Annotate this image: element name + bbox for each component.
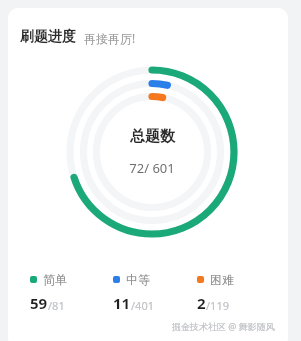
staticText: 再接再厉! <box>84 30 136 46</box>
button[interactable]: 刷题进度 <box>20 28 136 46</box>
staticText: 59 <box>30 293 48 313</box>
staticText: 2 <box>197 293 206 313</box>
staticText: 总题数 <box>130 127 175 146</box>
button[interactable]: 简单 <box>30 272 113 313</box>
other: Problem progress rings <box>66 66 238 238</box>
staticText: 简单 <box>43 272 67 287</box>
button[interactable]: 总题数 <box>129 127 175 177</box>
button[interactable]: 困难 <box>197 272 281 313</box>
staticText: /119 <box>206 298 229 313</box>
staticText: /81 <box>48 298 65 313</box>
staticText: 中等 <box>126 272 150 287</box>
staticText: 刷题进度 <box>20 28 76 46</box>
button[interactable]: 中等 <box>113 272 197 313</box>
staticText: /401 <box>131 298 154 313</box>
staticText: 掘金技术社区 @ 舞影随风 <box>172 320 275 332</box>
staticText: 11 <box>113 293 131 313</box>
staticText: 72/ 601 <box>129 159 175 177</box>
staticText: 困难 <box>210 272 234 287</box>
